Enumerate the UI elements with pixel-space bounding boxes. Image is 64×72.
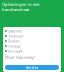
staticText: Factuur xyxy=(8,43,21,49)
staticText: Verder xyxy=(25,65,38,70)
button[interactable]: Bellen xyxy=(5,38,59,43)
staticText: Meer hulp nodig? xyxy=(5,54,35,60)
button[interactable]: Account xyxy=(5,48,59,53)
button[interactable]: Factuur xyxy=(5,43,59,48)
staticText: Televisie xyxy=(8,33,23,39)
staticText: Internet xyxy=(8,28,21,34)
staticText: Oplossingen in een handomdraai xyxy=(2,1,40,12)
button[interactable]: Internet xyxy=(5,28,59,33)
staticText: Account xyxy=(8,48,22,54)
staticText: Bellen xyxy=(8,38,19,44)
button[interactable]: Televisie xyxy=(5,33,59,38)
button[interactable]: Verder xyxy=(5,65,59,70)
